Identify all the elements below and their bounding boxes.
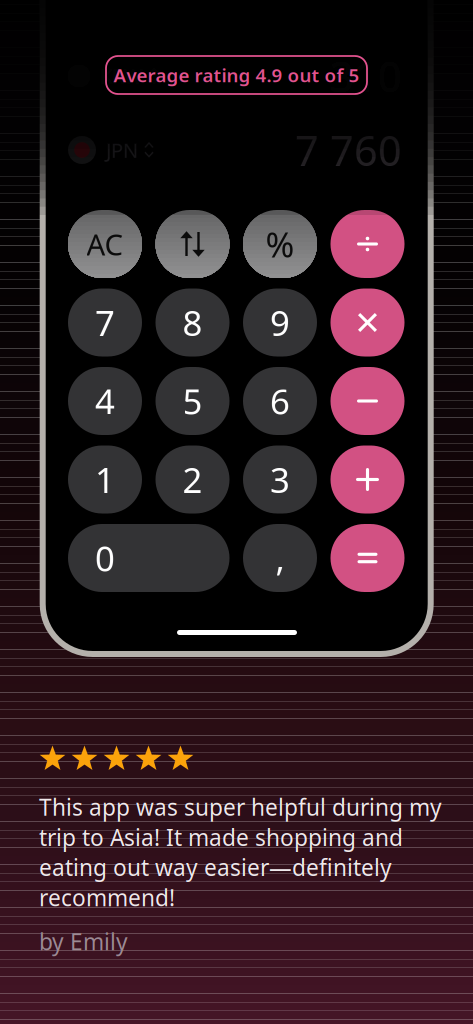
button[interactable]: JPN bbox=[68, 130, 402, 170]
staticText: 7 bbox=[95, 299, 115, 345]
staticText: 4 bbox=[95, 378, 115, 424]
button[interactable]: 4 bbox=[68, 367, 142, 435]
button[interactable]: 1 bbox=[68, 445, 142, 513]
button[interactable] bbox=[330, 367, 404, 435]
staticText: 3 bbox=[270, 456, 290, 502]
button[interactable]: KRW bbox=[68, 56, 402, 96]
button[interactable]: AC bbox=[68, 210, 142, 278]
button[interactable]: 7 bbox=[68, 288, 142, 356]
button[interactable]: 0 bbox=[68, 524, 229, 592]
staticText: JPN bbox=[106, 137, 138, 163]
button[interactable]: 3 bbox=[243, 445, 317, 513]
staticText: % bbox=[265, 221, 294, 267]
button[interactable]: 2 bbox=[155, 445, 229, 513]
button[interactable] bbox=[330, 524, 404, 592]
staticText: This app was super helpful during my tri… bbox=[39, 792, 442, 912]
staticText: by Emily bbox=[39, 926, 128, 956]
staticText: KRW bbox=[100, 63, 143, 89]
staticText: AC bbox=[86, 224, 123, 263]
button[interactable]: 6 bbox=[243, 367, 317, 435]
button[interactable] bbox=[330, 210, 404, 278]
staticText: 8 bbox=[182, 299, 202, 345]
button[interactable] bbox=[155, 210, 229, 278]
staticText: 9 bbox=[270, 299, 290, 345]
button[interactable]: 8 bbox=[155, 288, 229, 356]
button[interactable]: % bbox=[243, 210, 317, 278]
staticText: 310 bbox=[330, 49, 402, 103]
staticText: , bbox=[275, 535, 284, 581]
button[interactable] bbox=[330, 288, 404, 356]
button[interactable] bbox=[330, 445, 404, 513]
staticText: 6 bbox=[270, 378, 290, 424]
button[interactable]: , bbox=[243, 524, 317, 592]
staticText: 2 bbox=[182, 456, 202, 502]
button[interactable]: 5 bbox=[155, 367, 229, 435]
button[interactable]: Average rating 4.9 out of 5 bbox=[106, 56, 367, 94]
staticText: Average rating 4.9 out of 5 bbox=[113, 63, 359, 87]
staticText: 7 760 bbox=[295, 123, 402, 177]
button[interactable]: 9 bbox=[243, 288, 317, 356]
staticText: 1 bbox=[95, 456, 115, 502]
staticText: 5 bbox=[182, 378, 202, 424]
staticText: 0 bbox=[95, 535, 115, 581]
